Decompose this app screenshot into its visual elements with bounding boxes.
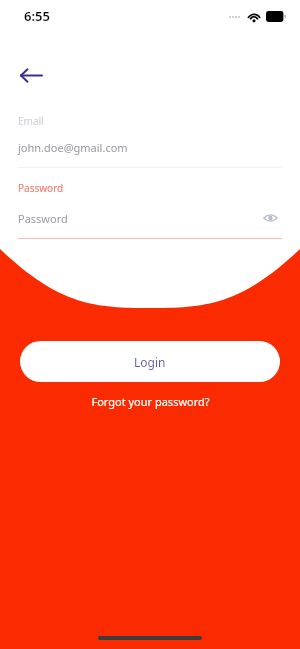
staticText: Forgot your password? <box>91 394 210 409</box>
staticText: Login <box>134 354 166 370</box>
button[interactable]: Back <box>9 53 53 97</box>
staticText: john.doe@gmail.com <box>18 140 128 155</box>
staticText: Email <box>18 114 44 128</box>
button[interactable]: Forgot your password? <box>0 390 300 412</box>
button[interactable]: Password <box>18 211 258 226</box>
button[interactable]: Login <box>20 341 280 382</box>
button[interactable]: Show password <box>258 206 282 230</box>
staticText: Password <box>18 211 68 226</box>
staticText: Password <box>18 181 64 195</box>
staticText: 6:55 <box>24 7 50 25</box>
button[interactable]: john.doe@gmail.com <box>18 140 282 155</box>
